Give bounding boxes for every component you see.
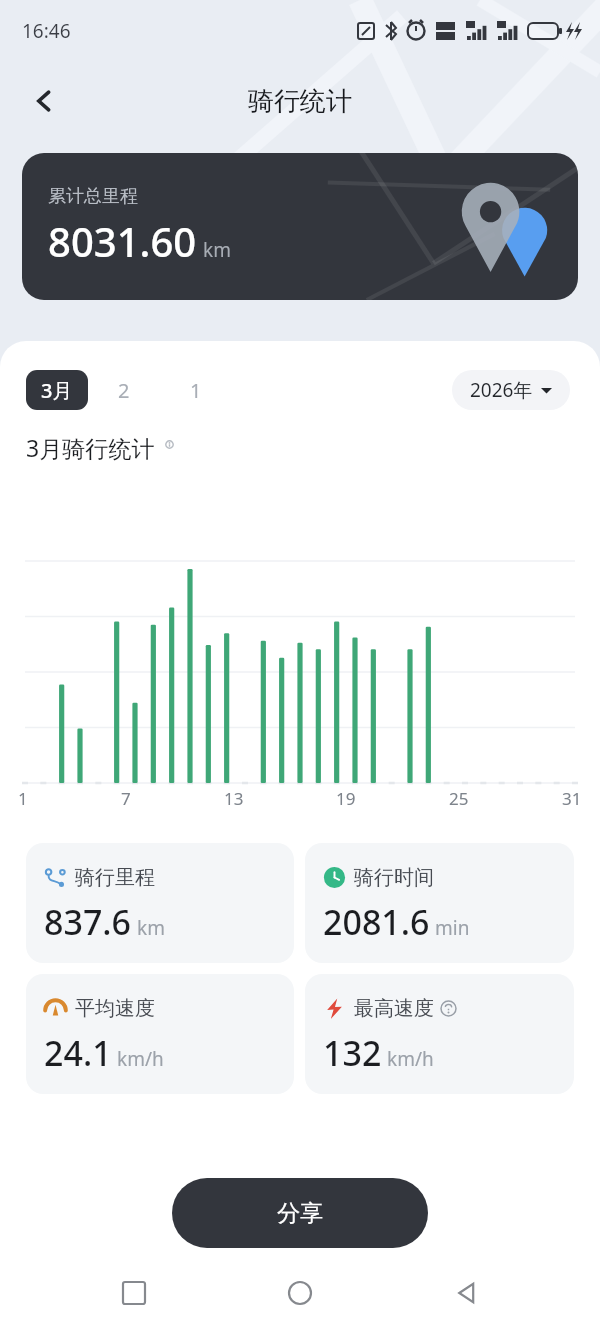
staticText: 累计总里程 [48, 185, 138, 208]
button[interactable]: 平均速度 [26, 974, 294, 1094]
staticText: km [203, 237, 231, 263]
button[interactable]: 分享 [172, 1178, 428, 1248]
staticText: 31 [562, 787, 582, 810]
staticText: 7 [121, 787, 131, 810]
staticText: 2081.6 [323, 899, 430, 945]
button[interactable]: Recents [102, 1261, 166, 1325]
button[interactable]: 1 [160, 370, 232, 410]
staticText: 2026年 [470, 377, 533, 403]
staticText: 1 [18, 787, 28, 810]
button[interactable]: 2026年 [452, 370, 570, 410]
staticText: 19 [336, 787, 356, 810]
button[interactable]: Home [268, 1261, 332, 1325]
button[interactable]: 累计总里程 [22, 153, 578, 300]
button[interactable]: 骑行时间 [305, 843, 574, 963]
button[interactable]: Back [18, 75, 70, 127]
staticText: km/h [117, 1046, 164, 1072]
button[interactable]: 2 [88, 370, 160, 410]
button[interactable]: Back [434, 1261, 498, 1325]
staticText: 25 [449, 787, 469, 810]
staticText: 骑行时间 [354, 865, 434, 890]
staticText: 3月骑行统计 [26, 432, 155, 463]
staticText: 13 [224, 787, 244, 810]
button[interactable]: 3月 [26, 370, 88, 410]
staticText: 分享 [277, 1199, 323, 1228]
staticText: 16:46 [22, 18, 71, 44]
button[interactable]: 骑行里程 [26, 843, 294, 963]
staticText: 骑行统计 [248, 85, 352, 118]
staticText: 132 [323, 1030, 382, 1076]
staticText: 最高速度 [354, 996, 434, 1021]
staticText: km/h [387, 1046, 434, 1072]
staticText: 8031.60 [48, 214, 197, 268]
staticText: 骑行里程 [75, 865, 155, 890]
staticText: min [435, 915, 470, 941]
staticText: km [137, 915, 165, 941]
staticText: 24.1 [44, 1030, 112, 1076]
staticText: 2 [118, 377, 130, 404]
staticText: 837.6 [44, 899, 132, 945]
other: Map [456, 179, 552, 275]
staticText: 1 [190, 377, 202, 404]
staticText: 平均速度 [75, 996, 155, 1021]
button[interactable]: 最高速度 [305, 974, 574, 1094]
staticText: 3月 [41, 377, 73, 404]
